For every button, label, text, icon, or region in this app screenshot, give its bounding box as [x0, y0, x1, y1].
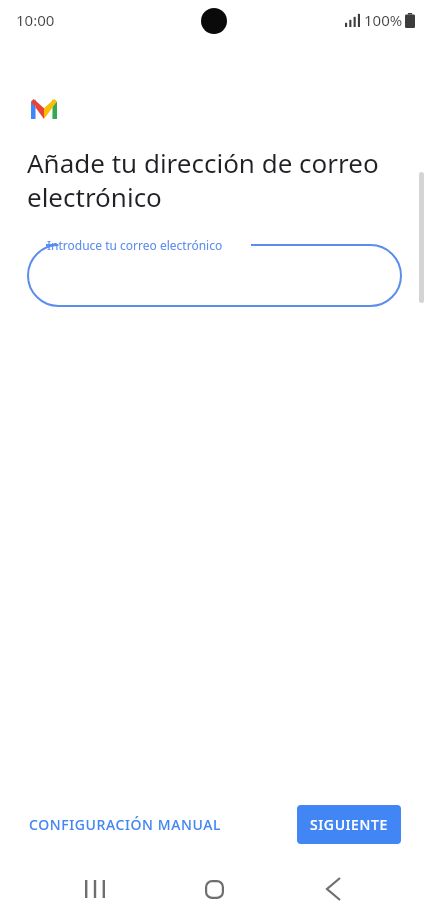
button[interactable]: Back	[309, 865, 357, 913]
button[interactable]: CONFIGURACIÓN MANUAL	[21, 807, 230, 842]
staticText: 100%	[364, 10, 403, 30]
staticText: CONFIGURACIÓN MANUAL	[29, 815, 222, 834]
staticText: Introduce tu correo electrónico	[47, 237, 223, 253]
staticText: 10:00	[16, 10, 55, 30]
button[interactable]: SIGUIENTE	[297, 805, 401, 844]
staticText: Añade tu dirección de correo electrónico	[27, 145, 395, 214]
button[interactable]: Introduce tu correo electrónico	[27, 237, 402, 307]
button[interactable]: Home	[190, 865, 238, 913]
button[interactable]: Recents	[71, 865, 119, 913]
staticText: SIGUIENTE	[310, 815, 388, 834]
